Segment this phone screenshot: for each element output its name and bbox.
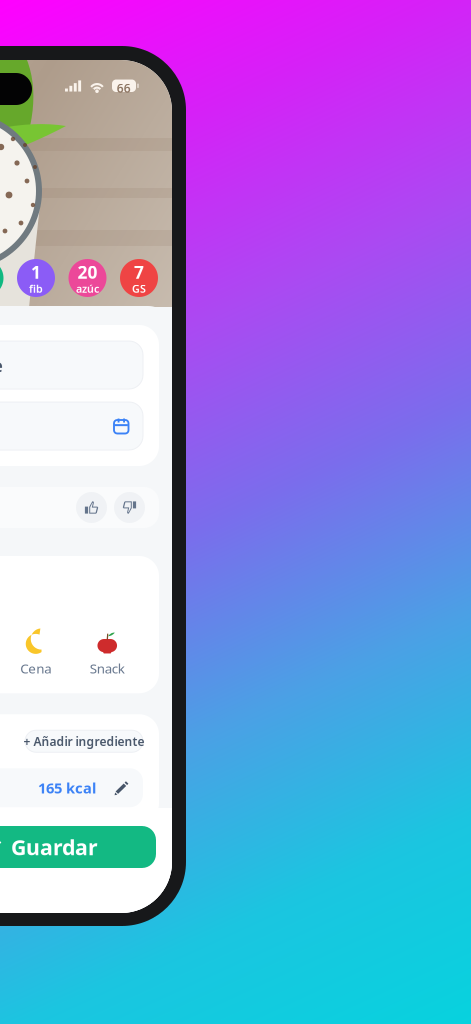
staticText: fib: [29, 281, 43, 296]
staticText: azúc: [76, 281, 99, 296]
staticText: + Añadir ingrediente: [23, 733, 144, 749]
button[interactable]: Cena: [0, 633, 71, 675]
button[interactable]: + Añadir ingrediente: [25, 730, 143, 752]
staticText: 20: [77, 260, 97, 283]
staticText: GS: [132, 281, 146, 296]
staticText: Guardar: [11, 833, 98, 861]
staticText: Cena: [20, 659, 51, 677]
staticText: 165 kcal: [38, 778, 96, 797]
staticText: Café con leche: [0, 353, 3, 377]
staticText: 1: [31, 260, 41, 283]
staticText: 66: [117, 80, 131, 96]
button[interactable]: Guardar: [0, 826, 156, 868]
button[interactable]: Snack: [71, 633, 143, 675]
staticText: Snack: [90, 659, 125, 677]
staticText: 7: [134, 260, 144, 283]
button[interactable]: No me gusta: [114, 492, 145, 523]
button[interactable]: Me gusta: [76, 492, 107, 523]
